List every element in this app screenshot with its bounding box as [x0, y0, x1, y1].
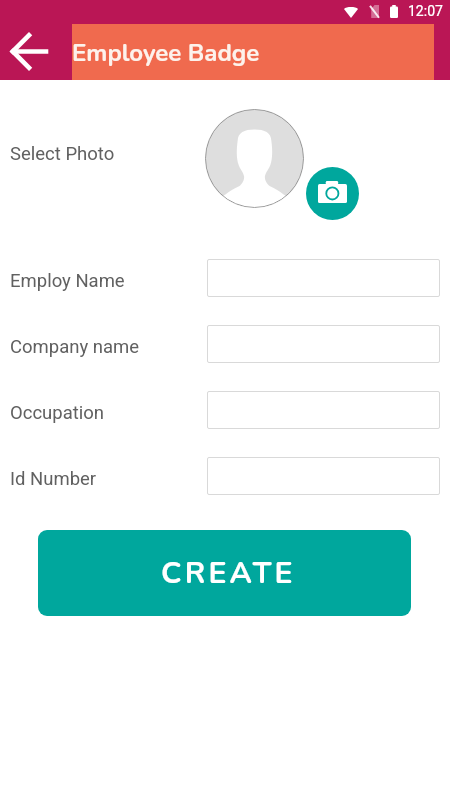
button[interactable] — [207, 259, 440, 297]
button[interactable]: Take photo — [306, 167, 359, 220]
staticText: CREATE — [161, 553, 296, 594]
button[interactable] — [207, 391, 440, 429]
button[interactable]: Profile photo — [205, 109, 304, 208]
staticText: Employee Badge — [72, 37, 260, 70]
staticText: Employ Name — [10, 270, 125, 292]
button[interactable]: CREATE — [38, 530, 411, 616]
button[interactable] — [207, 457, 440, 495]
staticText: Id Number — [10, 468, 97, 490]
staticText: Select Photo — [10, 143, 115, 165]
staticText: 12:07 — [408, 3, 443, 19]
button[interactable] — [207, 325, 440, 363]
staticText: Company name — [10, 336, 140, 358]
button[interactable]: Back — [5, 28, 52, 75]
staticText: Occupation — [10, 402, 105, 424]
